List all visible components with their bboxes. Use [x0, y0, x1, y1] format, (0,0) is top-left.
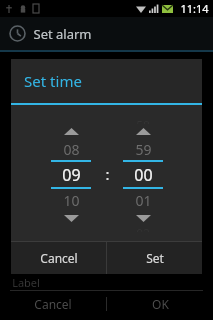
staticText: :: [105, 164, 110, 184]
staticText: Set alarm: [33, 25, 92, 43]
staticText: OK: [152, 296, 169, 312]
button[interactable]: Cancel: [11, 242, 106, 274]
staticText: 11:14: [180, 1, 209, 16]
button[interactable]: Label: [0, 274, 213, 291]
button[interactable]: Set alarm: [0, 17, 213, 50]
button[interactable]: Increment Minute: [114, 124, 172, 138]
staticText: Cancel: [40, 250, 78, 266]
staticText: 59: [135, 140, 152, 159]
staticText: 10: [63, 191, 80, 210]
button[interactable]: 00: [114, 162, 172, 187]
staticText: Label: [12, 275, 40, 290]
staticText: Cancel: [34, 296, 72, 312]
button[interactable]: Decrement Hour: [42, 211, 100, 225]
staticText: Set time: [24, 71, 82, 91]
button[interactable]: OK: [107, 291, 213, 317]
staticText: 00: [134, 164, 153, 186]
button[interactable]: Increment Hour: [42, 124, 100, 138]
button[interactable]: Set: [107, 242, 202, 274]
button[interactable]: Decrement Minute: [114, 211, 172, 225]
button[interactable]: 09: [42, 162, 100, 187]
button[interactable]: Cancel: [0, 291, 106, 317]
staticText: 09: [62, 164, 81, 186]
staticText: Set: [146, 250, 164, 266]
staticText: 01: [135, 191, 152, 210]
staticText: 08: [63, 140, 80, 159]
